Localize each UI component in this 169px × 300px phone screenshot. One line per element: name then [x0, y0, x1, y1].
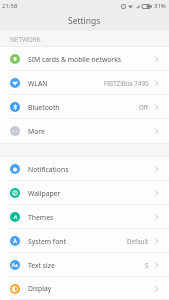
- staticText: SIM cards & mobile networks: [28, 55, 122, 64]
- other: Open: [153, 56, 160, 63]
- button[interactable]: WALL: [0, 181, 169, 205]
- staticText: NETWORK: [10, 35, 41, 44]
- other: Open: [153, 128, 160, 135]
- staticText: Themes: [28, 213, 54, 222]
- staticText: 21:58: [2, 2, 18, 10]
- other: BT: [10, 102, 20, 112]
- button[interactable]: MORE: [0, 119, 169, 143]
- other: Open: [153, 238, 160, 245]
- staticText: Display: [28, 284, 52, 293]
- button[interactable]: BT: [0, 95, 169, 119]
- staticText: Text size: [28, 261, 55, 270]
- staticText: 31%: [154, 2, 166, 10]
- staticText: FRITZ!Box 7490: [104, 79, 149, 87]
- button[interactable]: DISPLAY: [0, 277, 169, 300]
- button[interactable]: NOTIF: [0, 157, 169, 181]
- other: FONT: [10, 236, 20, 246]
- other: DISPLAY: [10, 284, 20, 294]
- other: Open: [153, 285, 160, 292]
- staticText: Default: [127, 237, 149, 245]
- staticText: Bluetooth: [28, 103, 60, 112]
- staticText: S: [145, 261, 149, 269]
- other: TEXTSIZE: [10, 260, 20, 270]
- button[interactable]: WIFI: [0, 71, 169, 95]
- other: Open: [153, 104, 160, 111]
- other: Open: [153, 214, 160, 221]
- other: MORE: [10, 126, 20, 136]
- other: THEME: [10, 212, 20, 222]
- other: NOTIF: [10, 164, 20, 174]
- other: Open: [153, 262, 160, 269]
- staticText: Notifications: [28, 165, 69, 174]
- other: WALL: [10, 188, 20, 198]
- other: Open: [153, 80, 160, 87]
- other: Open: [153, 190, 160, 197]
- staticText: Off: [139, 103, 149, 111]
- button[interactable]: THEME: [0, 205, 169, 229]
- button[interactable]: SIM: [0, 47, 169, 71]
- staticText: Wallpaper: [28, 189, 61, 198]
- other: Open: [153, 166, 160, 173]
- button[interactable]: FONT: [0, 229, 169, 253]
- staticText: More: [28, 127, 45, 136]
- staticText: System font: [28, 237, 66, 246]
- staticText: Settings: [68, 15, 101, 27]
- other: WIFI: [10, 78, 20, 88]
- button[interactable]: TEXTSIZE: [0, 253, 169, 277]
- other: SIM: [10, 54, 20, 64]
- staticText: WLAN: [28, 79, 48, 88]
